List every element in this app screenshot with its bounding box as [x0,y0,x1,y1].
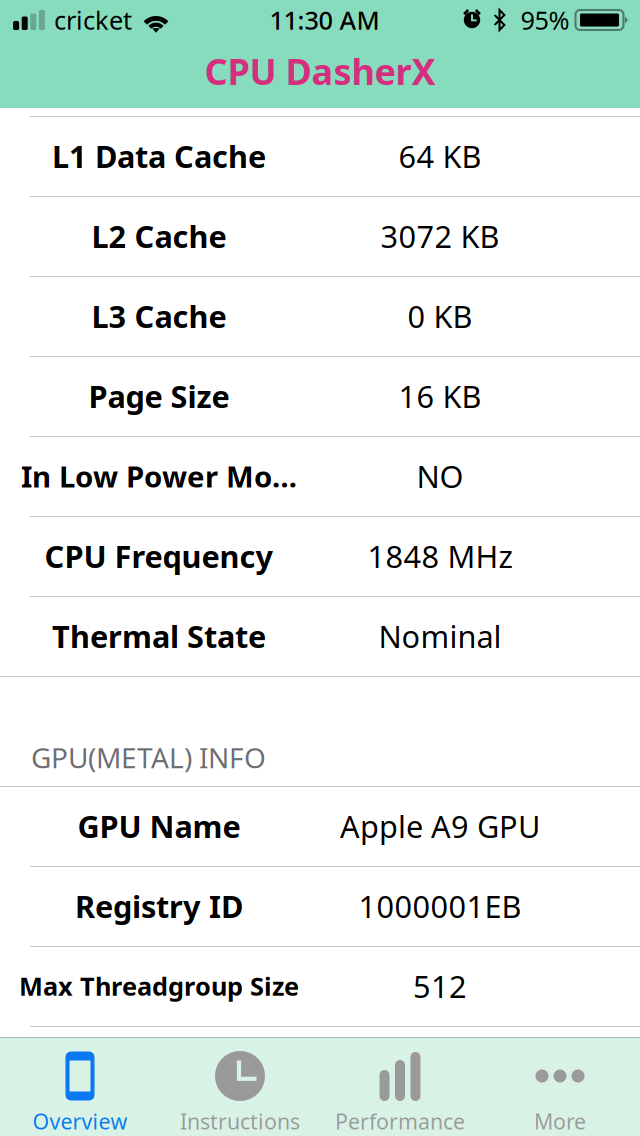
staticText: GPU Name [77,806,240,846]
staticText: NO [416,456,463,496]
staticText: Nominal [378,616,501,656]
button[interactable]: L3 Cache [0,276,640,356]
staticText: cricket [54,3,132,37]
button[interactable]: Registry ID [0,866,640,946]
staticText: 1000001EB [358,886,521,926]
button[interactable]: Performance [320,1038,480,1136]
staticText: Overview [32,1107,127,1135]
staticText: Apple A9 GPU [340,806,540,846]
button[interactable]: Thermal State [0,596,640,676]
staticText: 95% [520,3,569,37]
staticText: More [534,1107,586,1135]
staticText: Performance [335,1107,465,1135]
staticText: 0 KB [407,296,472,336]
button[interactable]: In Low Power Mo… [0,436,640,516]
button[interactable]: CPU Frequency [0,516,640,596]
button[interactable]: L2 Cache [0,196,640,276]
staticText: L2 Cache [91,216,226,256]
staticText: CPU Frequency [44,536,273,576]
button[interactable]: Max Threadgroup Size [0,946,640,1026]
staticText: 11:30 AM [269,3,379,37]
staticText: Thermal State [52,616,266,656]
staticText: 512 [413,966,467,1006]
staticText: L1 Data Cache [52,136,266,176]
staticText: 3072 KB [380,216,499,256]
staticText: In Low Power Mo… [21,456,297,495]
button[interactable]: More [480,1038,640,1136]
staticText: 64 KB [398,136,481,176]
staticText: 16 KB [398,376,481,416]
button[interactable]: L1 Data Cache [0,116,640,196]
staticText: Registry ID [75,886,243,926]
staticText: CPU DasherX [204,47,435,95]
button[interactable]: Overview [0,1038,160,1136]
staticText: L3 Cache [91,296,226,336]
button[interactable]: Page Size [0,356,640,436]
staticText: GPU(METAL) INFO [31,739,266,776]
staticText: Max Threadgroup Size [19,969,299,1003]
button[interactable]: Instructions [160,1038,320,1136]
staticText: Page Size [88,376,229,416]
staticText: 1848 MHz [367,536,512,576]
button[interactable]: GPU Name [0,786,640,866]
staticText: Instructions [180,1107,300,1135]
